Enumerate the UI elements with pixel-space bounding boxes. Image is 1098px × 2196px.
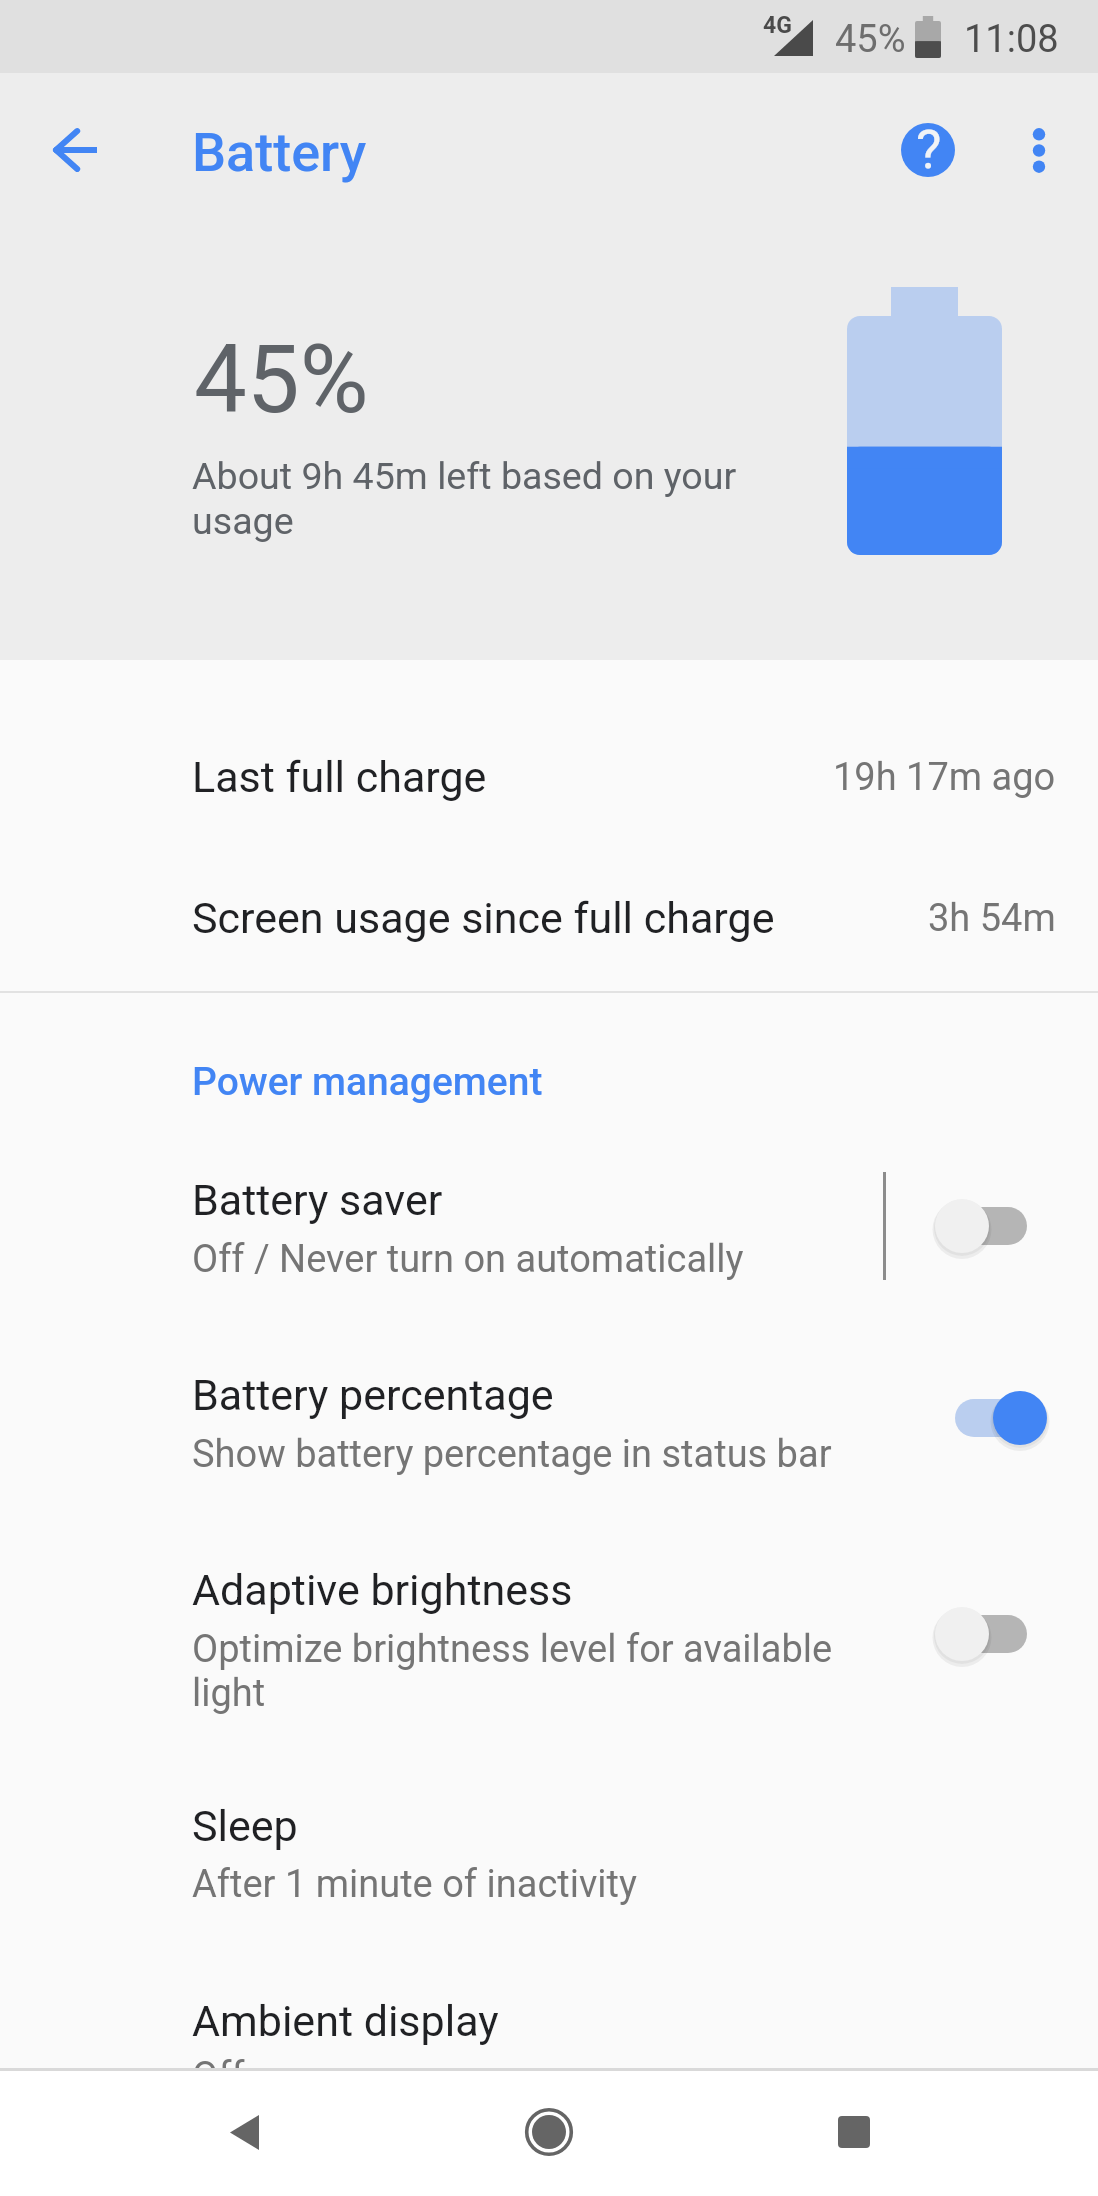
staticText: Off / Never turn on automatically xyxy=(192,1237,744,1282)
staticText: Last full charge xyxy=(192,752,487,802)
staticText: 4G xyxy=(763,12,792,39)
staticText: Show battery percentage in status bar xyxy=(192,1432,832,1477)
button[interactable]: Sleep xyxy=(0,1795,1098,1945)
staticText: Off xyxy=(192,2054,245,2068)
staticText: ? xyxy=(916,118,942,181)
staticText: 45% xyxy=(194,325,369,435)
staticText: Optimize brightness level for available … xyxy=(192,1627,833,1715)
staticText: Sleep xyxy=(192,1801,298,1851)
button[interactable]: Battery percentage xyxy=(916,1353,1076,1483)
staticText: Ambient display xyxy=(192,1996,499,2046)
button[interactable]: Home xyxy=(489,2072,609,2192)
button[interactable]: Back xyxy=(27,102,123,198)
button[interactable]: More options xyxy=(991,102,1087,198)
button[interactable]: Help xyxy=(880,102,976,198)
staticText: Battery percentage xyxy=(192,1370,554,1420)
staticText: 11:08 xyxy=(964,17,1059,62)
button[interactable]: Recent apps xyxy=(794,2072,914,2192)
staticText: 45% xyxy=(835,17,906,62)
button[interactable]: Ambient display xyxy=(0,1990,1098,2068)
button[interactable]: Battery saver xyxy=(0,1159,1098,1309)
button[interactable]: Last full charge xyxy=(0,731,1098,823)
button[interactable]: Adaptive brightness xyxy=(0,1549,1098,1739)
staticText: Screen usage since full charge xyxy=(192,893,775,943)
button[interactable]: Back xyxy=(185,2072,305,2192)
button[interactable]: Battery percentage xyxy=(0,1354,1098,1504)
staticText: Power management xyxy=(192,1059,543,1105)
button[interactable]: Battery saver xyxy=(916,1161,1076,1291)
staticText: After 1 minute of inactivity xyxy=(192,1862,637,1907)
staticText: About 9h 45m left based on your usage xyxy=(192,454,737,543)
staticText: 19h 17m ago xyxy=(833,755,1056,800)
staticText: 3h 54m xyxy=(928,896,1056,941)
staticText: Battery xyxy=(192,121,367,184)
staticText: Adaptive brightness xyxy=(192,1565,573,1615)
button[interactable]: Screen usage since full charge xyxy=(0,872,1098,964)
staticText: Battery saver xyxy=(192,1175,443,1225)
button[interactable]: Adaptive brightness xyxy=(916,1569,1076,1699)
